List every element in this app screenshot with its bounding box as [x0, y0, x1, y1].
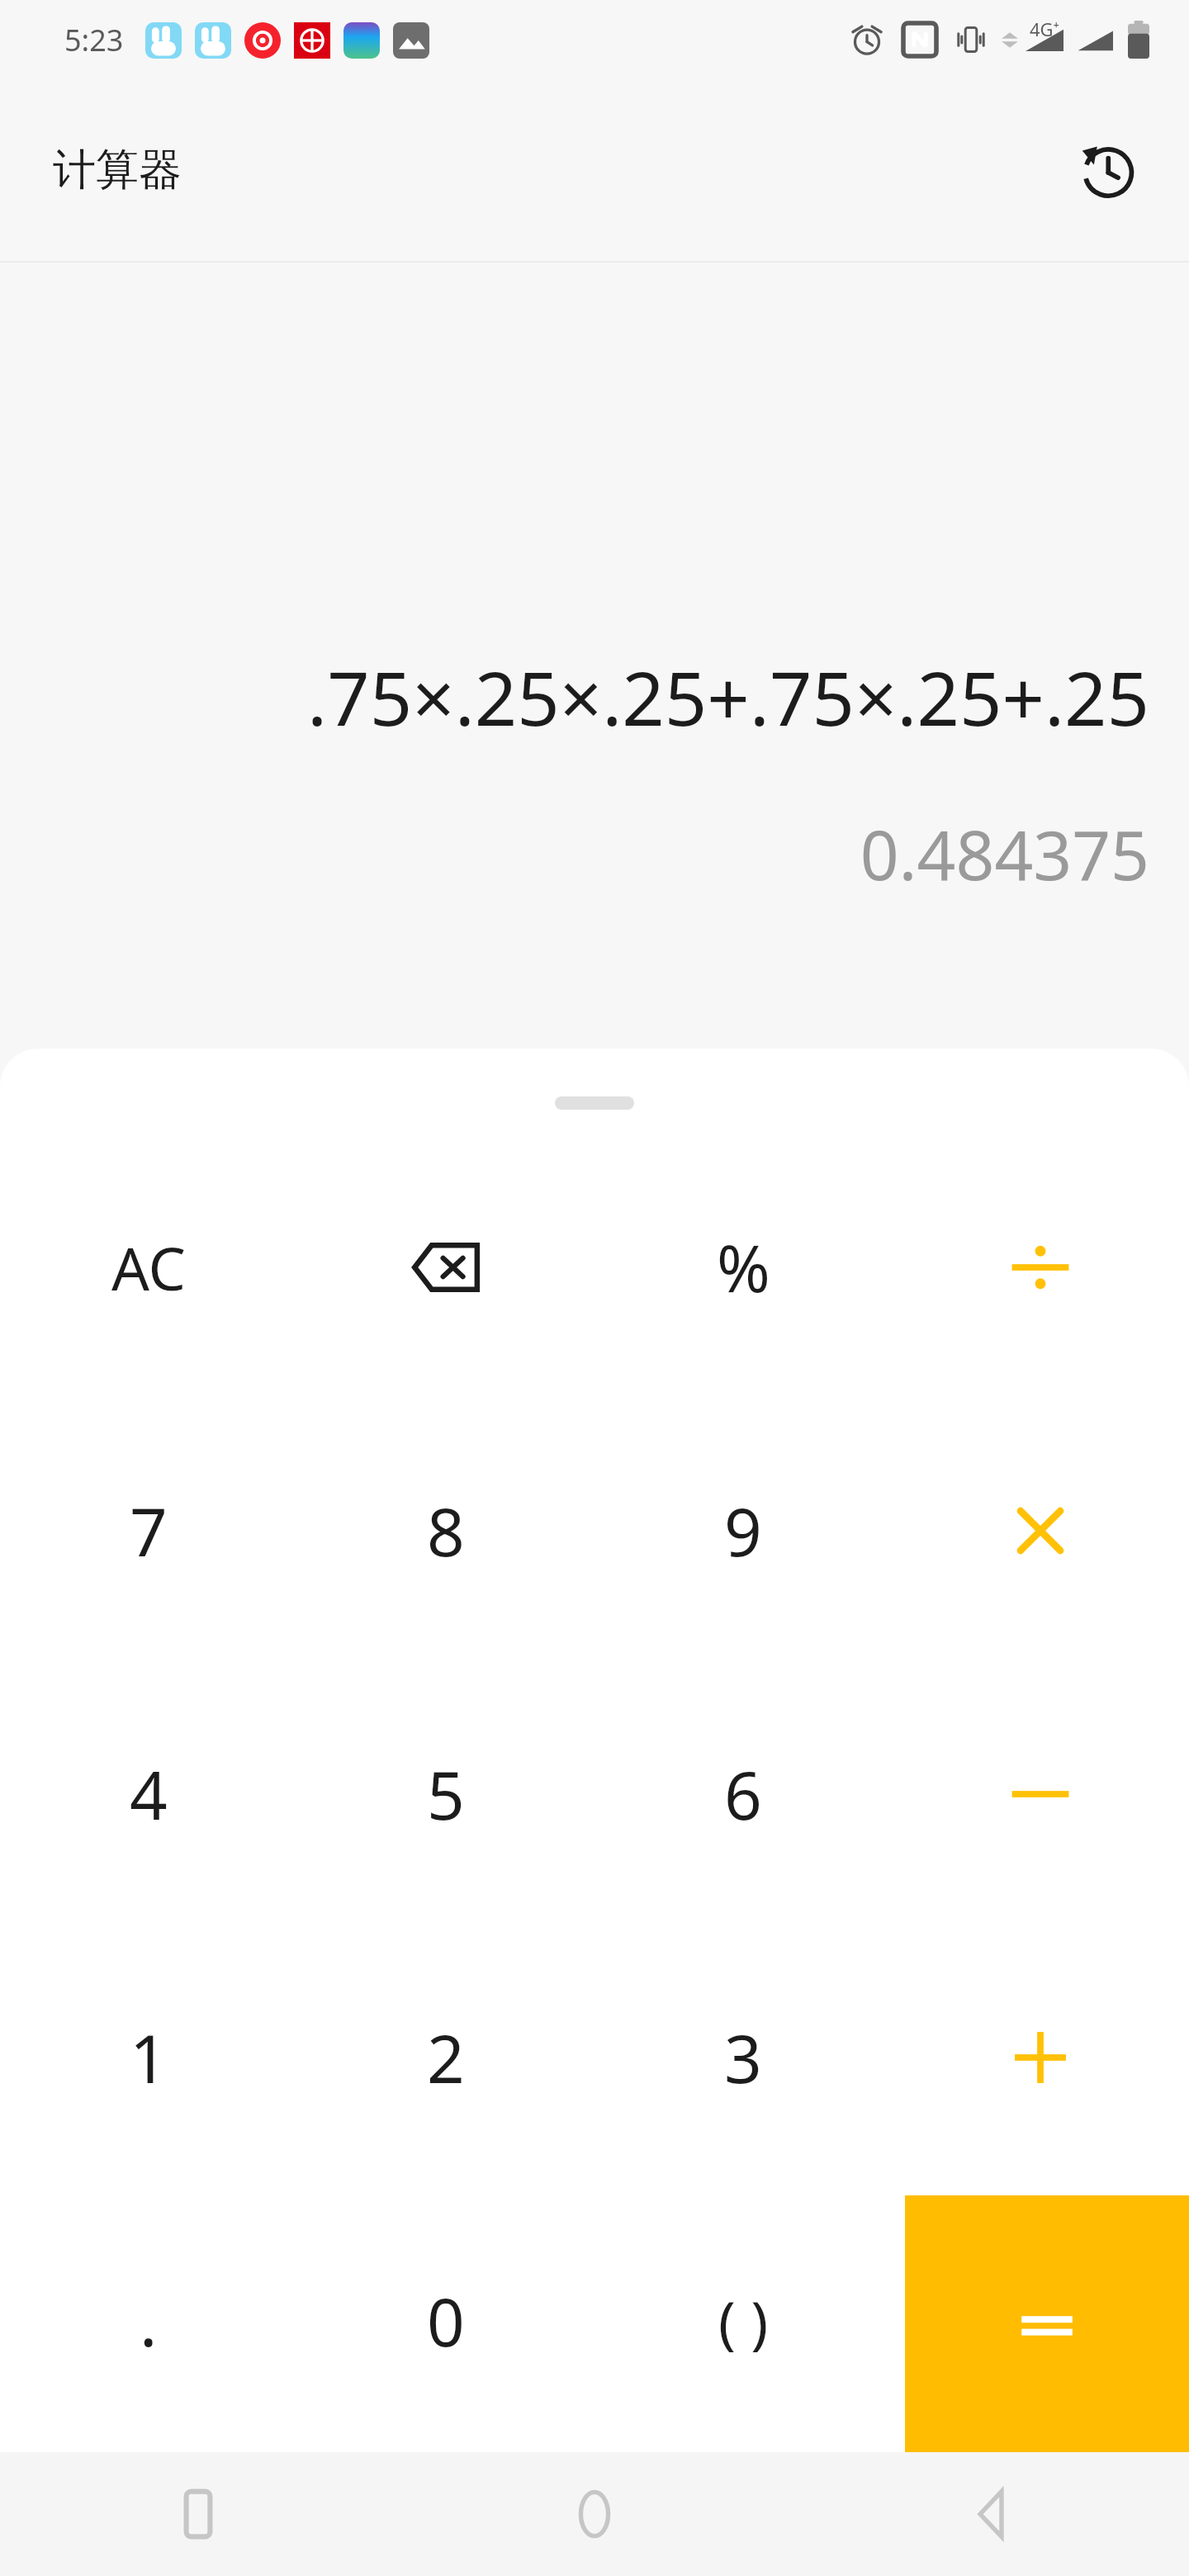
staticText: .75×.25×.25+.75×.25+.25	[307, 646, 1149, 748]
button[interactable]: 7	[0, 1399, 297, 1662]
button[interactable]: Recents	[0, 2452, 396, 2576]
button[interactable]: Home	[396, 2452, 793, 2576]
staticText: 8	[427, 1485, 465, 1575]
staticText: 2	[427, 2012, 465, 2102]
staticText: 0	[427, 2275, 465, 2365]
staticText: 6	[724, 1749, 762, 1839]
button[interactable]: 1	[0, 1925, 297, 2189]
button[interactable]: Equals	[905, 2195, 1189, 2452]
staticText: 计算器	[53, 143, 182, 197]
button[interactable]: Minus	[892, 1662, 1189, 1925]
button[interactable]: Divide	[892, 1136, 1189, 1399]
button[interactable]: 5	[297, 1662, 594, 1925]
button[interactable]: Delete	[297, 1136, 594, 1399]
button[interactable]: History	[1057, 121, 1156, 220]
button[interactable]: AC	[0, 1136, 297, 1399]
staticText: 7	[130, 1485, 168, 1575]
staticText: AC	[111, 1227, 187, 1308]
button[interactable]: 3	[594, 1925, 892, 2189]
button[interactable]: Back	[793, 2452, 1189, 2576]
button[interactable]: 0	[297, 2189, 594, 2452]
staticText: 1	[130, 2012, 168, 2102]
button[interactable]: 6	[594, 1662, 892, 1925]
staticText: 5	[427, 1749, 465, 1839]
button[interactable]: .	[0, 2189, 297, 2452]
button[interactable]: %	[594, 1136, 892, 1399]
button[interactable]: 4	[0, 1662, 297, 1925]
button[interactable]: ( )	[594, 2189, 892, 2452]
button[interactable]: Multiply	[892, 1399, 1189, 1662]
button[interactable]: Plus	[892, 1925, 1189, 2189]
staticText: 3	[724, 2012, 762, 2102]
staticText: 5:23	[64, 20, 124, 60]
staticText: ( )	[718, 2281, 769, 2360]
button[interactable]: 9	[594, 1399, 892, 1662]
staticText: .	[140, 2275, 158, 2365]
staticText: 4	[130, 1749, 168, 1839]
staticText: 0.484375	[860, 807, 1149, 900]
button[interactable]: 8	[297, 1399, 594, 1662]
button[interactable]: 2	[297, 1925, 594, 2189]
staticText: 9	[724, 1485, 762, 1575]
staticText: 4G⁺	[1030, 17, 1060, 41]
staticText: %	[717, 1224, 770, 1311]
